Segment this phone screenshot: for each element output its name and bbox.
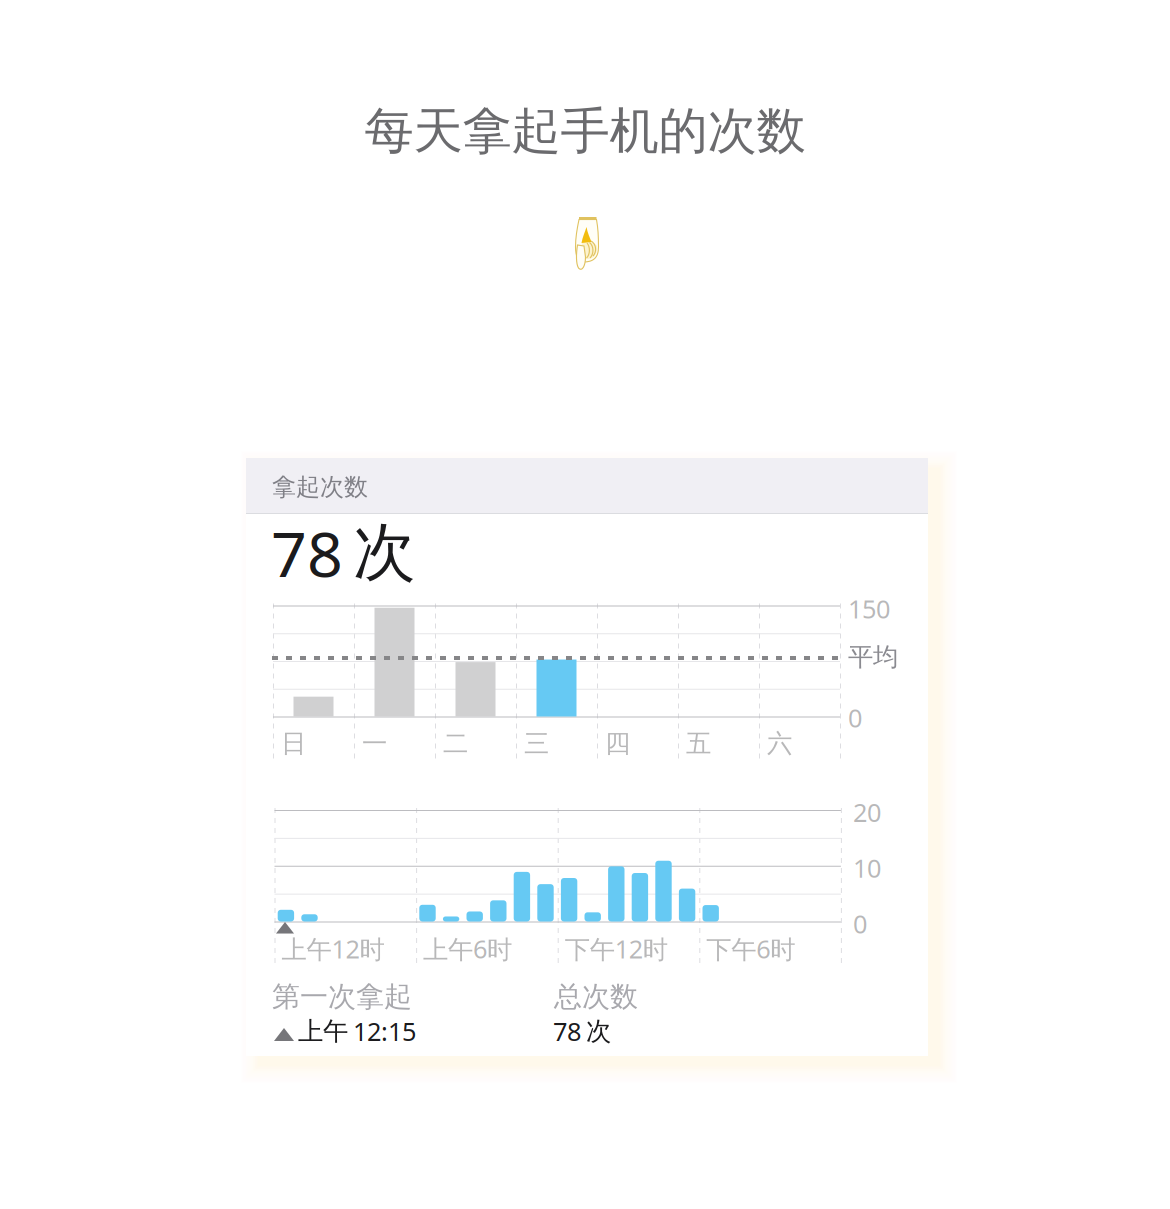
staticText: 上午12时	[281, 931, 384, 966]
staticText: 0	[848, 700, 862, 735]
staticText: 拿起次数	[272, 472, 368, 502]
staticText: 次	[586, 1015, 611, 1047]
staticText: 上午6时	[423, 931, 512, 966]
staticText: 0	[853, 906, 867, 941]
staticText: 下午12时	[565, 931, 668, 966]
staticText: 每天拿起手机的次数	[364, 100, 805, 162]
staticText: 78	[271, 510, 343, 595]
staticText: 二	[443, 727, 468, 759]
staticText: 六	[767, 727, 792, 759]
staticText: 一	[362, 727, 387, 759]
staticText: 总次数	[554, 979, 638, 1014]
staticText: 三	[524, 727, 549, 759]
staticText: 下午6时	[706, 931, 795, 966]
staticText: 日	[281, 727, 306, 759]
staticText: 四	[605, 727, 630, 759]
staticText: 上午	[298, 1015, 348, 1047]
staticText: 20	[853, 795, 881, 829]
staticText: 150	[848, 591, 890, 626]
staticText: 78	[553, 1014, 581, 1048]
staticText: 五	[686, 727, 711, 759]
button[interactable]: 拿起次数 78 次	[246, 458, 928, 1056]
staticText: 次	[353, 513, 416, 592]
staticText: 平均	[848, 641, 898, 673]
staticText: 10	[853, 851, 881, 885]
staticText: 第一次拿起	[272, 979, 412, 1014]
staticText: 12:15	[353, 1014, 416, 1048]
